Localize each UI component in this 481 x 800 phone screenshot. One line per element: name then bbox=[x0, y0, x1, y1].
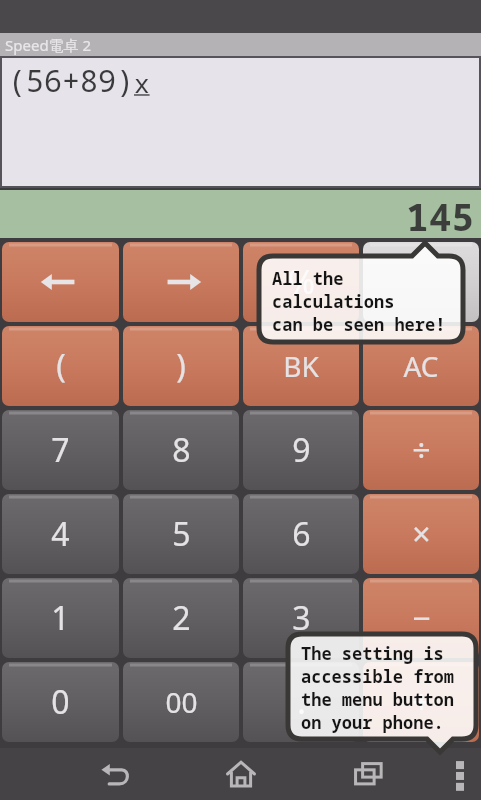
button[interactable]: More options bbox=[439, 748, 481, 800]
staticText: 7 bbox=[51, 428, 70, 472]
button[interactable]: × bbox=[363, 494, 479, 574]
staticText: − bbox=[412, 596, 431, 640]
button[interactable]: − bbox=[363, 578, 479, 658]
button[interactable]: . bbox=[243, 662, 359, 742]
staticText: 145 bbox=[406, 190, 475, 238]
staticText: can be seen here! bbox=[272, 313, 446, 336]
button[interactable]: 9 bbox=[243, 410, 359, 490]
staticText: 3 bbox=[292, 596, 311, 640]
staticText: 4 bbox=[51, 512, 70, 556]
staticText: + bbox=[412, 680, 431, 724]
button[interactable]: BK bbox=[243, 326, 359, 406]
button[interactable]: Back bbox=[85, 748, 143, 800]
button[interactable]: Move cursor left bbox=[2, 242, 119, 322]
staticText: 6 bbox=[292, 512, 311, 556]
button[interactable]: 7 bbox=[2, 410, 119, 490]
staticText: All the calculations bbox=[272, 267, 455, 313]
button[interactable]: ) bbox=[123, 326, 239, 406]
staticText: 1 bbox=[51, 596, 70, 640]
staticText: . bbox=[297, 680, 306, 724]
staticText: ( bbox=[56, 344, 66, 388]
staticText: ÷ bbox=[412, 428, 431, 472]
staticText: 5 bbox=[172, 512, 191, 556]
staticText: % bbox=[288, 260, 315, 304]
button[interactable]: 00 bbox=[123, 662, 239, 742]
button[interactable]: 4 bbox=[2, 494, 119, 574]
button[interactable]: 0 bbox=[2, 662, 119, 742]
button[interactable]: Recent apps bbox=[340, 748, 398, 800]
button[interactable]: 1 bbox=[2, 578, 119, 658]
staticText: 8 bbox=[172, 428, 191, 472]
button[interactable]: Home bbox=[212, 748, 270, 800]
staticText: x bbox=[134, 65, 150, 100]
button[interactable]: 2 bbox=[123, 578, 239, 658]
button[interactable]: Percent bbox=[363, 242, 479, 322]
button[interactable]: ÷ bbox=[363, 410, 479, 490]
staticText: BK bbox=[283, 347, 319, 385]
staticText: The setting is bbox=[301, 642, 444, 665]
button[interactable]: 8 bbox=[123, 410, 239, 490]
staticText: accessible from bbox=[301, 665, 454, 688]
staticText: AC bbox=[403, 347, 439, 385]
button[interactable]: + bbox=[363, 662, 479, 742]
button[interactable]: AC bbox=[363, 326, 479, 406]
button[interactable]: 3 bbox=[243, 578, 359, 658]
staticText: × bbox=[412, 512, 431, 556]
staticText: (56+89) bbox=[8, 60, 134, 101]
staticText: on your phone. bbox=[301, 711, 444, 734]
staticText: Speed電卓 2 bbox=[5, 35, 92, 55]
staticText: 0 bbox=[51, 680, 70, 724]
button[interactable]: 5 bbox=[123, 494, 239, 574]
staticText: the menu button bbox=[301, 688, 454, 711]
button[interactable]: 6 bbox=[243, 494, 359, 574]
staticText: 2 bbox=[172, 596, 191, 640]
button[interactable]: ( bbox=[2, 326, 119, 406]
staticText: ) bbox=[176, 344, 186, 388]
staticText: 9 bbox=[292, 428, 311, 472]
button[interactable]: % bbox=[243, 242, 359, 322]
staticText: 00 bbox=[165, 683, 198, 721]
button[interactable]: Move cursor right bbox=[123, 242, 239, 322]
